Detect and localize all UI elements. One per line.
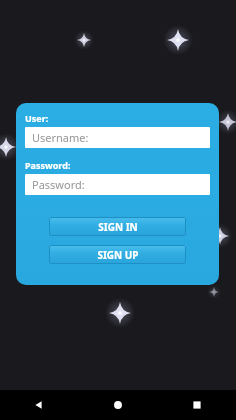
button[interactable]: Recent apps	[157, 390, 236, 420]
button[interactable]: Username:	[25, 127, 210, 148]
staticText: SIGN UP	[97, 248, 139, 262]
button[interactable]: SIGN IN	[49, 217, 186, 236]
staticText: SIGN IN	[98, 220, 138, 234]
button[interactable]: Back	[0, 390, 78, 420]
staticText: Password:	[25, 159, 71, 171]
button[interactable]: SIGN UP	[49, 245, 186, 264]
button[interactable]: Password:	[25, 174, 210, 195]
staticText: Password:	[32, 177, 85, 192]
staticText: User:	[25, 112, 49, 124]
staticText: Username:	[32, 130, 89, 145]
button[interactable]: Home	[78, 390, 157, 420]
